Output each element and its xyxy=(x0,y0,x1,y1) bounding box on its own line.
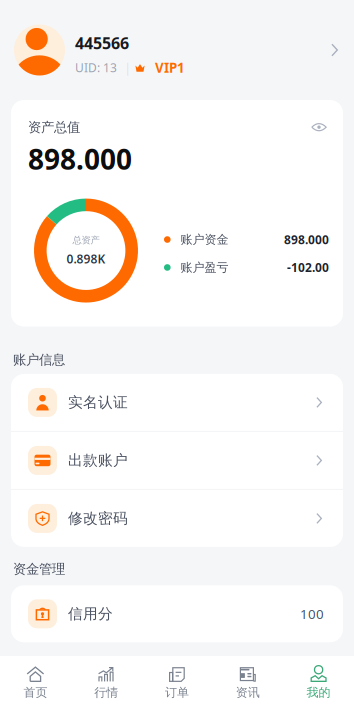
staticText: -102.00 xyxy=(287,259,329,275)
button[interactable]: 出款账户 xyxy=(11,432,343,489)
staticText: VIP1 xyxy=(155,59,185,76)
staticText: 898.000 xyxy=(284,232,329,247)
staticText: 信用分 xyxy=(68,605,113,623)
button[interactable]: 445566 xyxy=(0,0,354,100)
staticText: 实名认证 xyxy=(68,393,128,411)
staticText: 898.000 xyxy=(28,140,132,178)
button[interactable]: Hide balance xyxy=(311,121,327,134)
button[interactable]: 首页 xyxy=(0,660,71,706)
staticText: 100 xyxy=(300,605,324,623)
staticText: 总资产 xyxy=(72,234,99,246)
staticText: 0.898K xyxy=(66,251,105,267)
staticText: 账户信息 xyxy=(13,352,65,368)
button[interactable]: 修改密码 xyxy=(11,490,343,547)
staticText: 出款账户 xyxy=(68,451,128,469)
button[interactable]: 订单 xyxy=(142,660,212,706)
staticText: 445566 xyxy=(75,32,129,54)
staticText: 订单 xyxy=(165,685,189,700)
button[interactable]: 行情 xyxy=(71,660,142,706)
staticText: 资讯 xyxy=(236,685,260,700)
button[interactable]: 信用分 xyxy=(11,585,343,642)
staticText: 修改密码 xyxy=(68,509,128,527)
button[interactable]: 实名认证 xyxy=(11,374,343,431)
staticText: 账户资金 xyxy=(181,232,229,247)
staticText: UID: 13 xyxy=(75,60,117,76)
staticText: 账户盈亏 xyxy=(181,260,229,275)
button[interactable]: 我的 xyxy=(283,660,354,706)
staticText: 资产总值 xyxy=(28,119,80,135)
button[interactable]: 资讯 xyxy=(212,660,283,706)
staticText: 我的 xyxy=(307,685,331,700)
staticText: 首页 xyxy=(23,685,47,700)
staticText: | xyxy=(124,59,131,76)
staticText: 资金管理 xyxy=(13,561,65,577)
staticText: 行情 xyxy=(94,685,118,700)
